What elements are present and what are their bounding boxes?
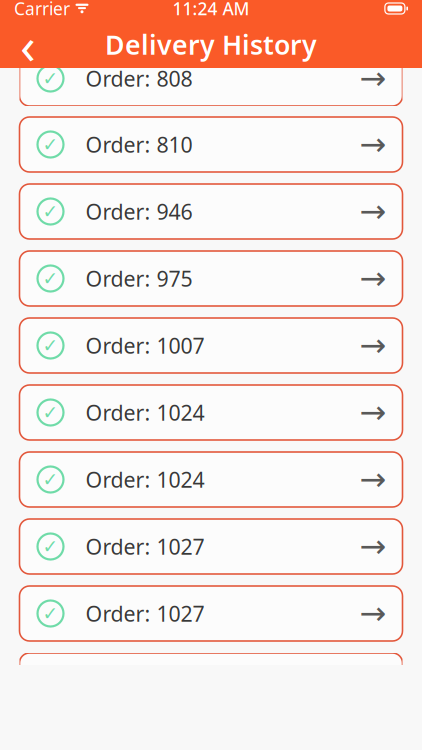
button[interactable]: ✓: [19, 452, 402, 507]
staticText: Order: 946: [85, 197, 192, 226]
staticText: ✓: [42, 603, 58, 624]
staticText: →: [359, 193, 386, 230]
staticText: →: [359, 394, 386, 431]
staticText: →: [359, 60, 386, 97]
button[interactable]: ✓: [19, 117, 402, 172]
staticText: →: [359, 327, 386, 364]
staticText: →: [359, 528, 386, 565]
staticText: Order: 1027: [85, 599, 204, 628]
staticText: Order: 1027: [85, 532, 204, 561]
staticText: ✓: [42, 402, 58, 423]
staticText: ✓: [42, 536, 58, 557]
staticText: →: [359, 595, 386, 632]
button[interactable]: ✓: [19, 184, 402, 239]
button[interactable]: ✓: [19, 251, 402, 306]
staticText: ‹: [20, 11, 36, 78]
staticText: ✓: [42, 68, 58, 89]
staticText: ✓: [42, 268, 58, 289]
staticText: Order: 1024: [85, 398, 204, 427]
button[interactable]: ✓: [19, 653, 402, 708]
staticText: Order: 1024: [85, 465, 204, 494]
staticText: ✓: [42, 335, 58, 356]
button[interactable]: Back: [6, 21, 50, 68]
staticText: ✓: [42, 201, 58, 222]
button[interactable]: ✓: [19, 519, 402, 574]
button[interactable]: ✓: [19, 51, 402, 106]
staticText: Order: 975: [85, 264, 192, 293]
button[interactable]: ✓: [19, 385, 402, 440]
staticText: Order: 808: [85, 64, 192, 93]
button[interactable]: ✓: [19, 586, 402, 641]
staticText: ✓: [42, 469, 58, 490]
staticText: →: [359, 126, 386, 163]
staticText: 11:24 AM: [172, 0, 249, 20]
staticText: Order: 1007: [85, 331, 204, 360]
staticText: →: [359, 461, 386, 498]
staticText: ✓: [42, 134, 58, 155]
staticText: Delivery History: [105, 27, 317, 62]
staticText: Order: 810: [85, 130, 192, 159]
staticText: Carrier: [14, 0, 70, 20]
staticText: →: [359, 260, 386, 297]
button[interactable]: ✓: [19, 318, 402, 373]
